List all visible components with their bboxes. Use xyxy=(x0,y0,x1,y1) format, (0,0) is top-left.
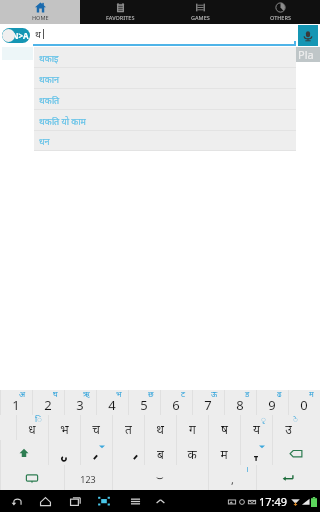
staticText: 6 xyxy=(172,396,180,414)
staticText: FAVORITES xyxy=(106,14,135,21)
staticText: 0 xyxy=(300,396,308,414)
staticText: छ xyxy=(148,388,154,399)
staticText: 4 xyxy=(108,396,116,414)
staticText: म xyxy=(309,388,314,399)
button[interactable]: उ xyxy=(272,415,304,440)
button[interactable]: , xyxy=(208,465,256,490)
staticText: अ xyxy=(19,388,26,399)
staticText: धन xyxy=(39,135,50,147)
button[interactable]: धन xyxy=(34,131,296,151)
button[interactable]: थकति यो काम xyxy=(34,110,296,131)
staticText: ब xyxy=(157,446,164,462)
staticText: थकति xyxy=(39,94,60,106)
button[interactable]: 6 xyxy=(160,390,192,415)
button[interactable]: म xyxy=(208,440,240,465)
staticText: GAMES xyxy=(191,14,210,21)
staticText: भ xyxy=(60,421,69,437)
button[interactable]: 4 xyxy=(96,390,128,415)
staticText: 9 xyxy=(268,396,276,414)
staticText: ऋ xyxy=(83,388,90,399)
staticText: य xyxy=(253,421,260,437)
staticText: OTHERS xyxy=(270,14,291,21)
button[interactable]: 5 xyxy=(128,390,160,415)
button[interactable]: FAVORITES xyxy=(80,0,160,24)
button[interactable]: ध xyxy=(16,415,48,440)
button[interactable]: Home xyxy=(36,490,54,512)
staticText: HOME xyxy=(32,14,49,21)
staticText: Plan xyxy=(298,47,320,62)
button[interactable]: च xyxy=(80,415,112,440)
button[interactable]: 8 xyxy=(224,390,256,415)
button[interactable]: GAMES xyxy=(160,0,240,24)
button[interactable]: 3 xyxy=(64,390,96,415)
button[interactable]: Keyboard settings xyxy=(0,465,64,490)
staticText: 5 xyxy=(140,396,148,414)
staticText: ⌣ xyxy=(156,471,164,483)
button[interactable]: थकाइ xyxy=(34,47,296,68)
button[interactable]: ⌣ xyxy=(112,465,208,490)
button[interactable]: 2 xyxy=(32,390,64,415)
button[interactable]: 9 xyxy=(256,390,288,415)
staticText: थकान xyxy=(39,73,59,85)
staticText: ट xyxy=(181,388,186,399)
staticText: ि xyxy=(35,413,42,424)
button[interactable]: Screenshot xyxy=(95,490,113,512)
button[interactable]: भ xyxy=(48,415,80,440)
staticText: भ xyxy=(116,388,122,399)
staticText: त xyxy=(125,421,132,437)
button[interactable]: थकति xyxy=(34,89,296,110)
button[interactable]: Shift xyxy=(0,440,48,465)
button[interactable]: 0 xyxy=(288,390,320,415)
button[interactable]: त xyxy=(112,415,144,440)
button[interactable]: Diacritic key xyxy=(240,440,272,465)
button[interactable]: थकान xyxy=(34,68,296,89)
staticText: 123 xyxy=(80,473,96,485)
button[interactable]: ग xyxy=(176,415,208,440)
staticText: थकति यो काम xyxy=(39,115,86,127)
staticText: , xyxy=(231,472,234,487)
staticText: क xyxy=(187,446,197,462)
button[interactable]: HOME xyxy=(0,0,80,24)
button[interactable]: थ xyxy=(144,415,176,440)
button[interactable]: ष xyxy=(208,415,240,440)
button[interactable]: Voice search xyxy=(298,25,318,46)
staticText: ऊ xyxy=(211,388,218,399)
button[interactable]: य xyxy=(240,415,272,440)
button[interactable]: Diacritic key xyxy=(48,440,80,465)
staticText: ग xyxy=(189,421,196,437)
button[interactable]: Diacritic key xyxy=(112,440,144,465)
button[interactable]: Menu xyxy=(126,490,144,512)
button[interactable]: क xyxy=(176,440,208,465)
staticText: म xyxy=(220,446,228,462)
button[interactable]: Hide navigation xyxy=(151,490,169,512)
staticText: े xyxy=(293,413,298,424)
staticText: घ xyxy=(53,388,58,399)
staticText: 1 xyxy=(12,396,20,414)
button[interactable]: 7 xyxy=(192,390,224,415)
staticText: 2 xyxy=(44,396,52,414)
staticText: ध xyxy=(28,421,36,437)
button[interactable]: 1 xyxy=(0,390,32,415)
staticText: ढ xyxy=(277,388,282,399)
staticText: ृ xyxy=(261,413,266,424)
staticText: थकाइ xyxy=(39,52,59,64)
staticText: ष xyxy=(221,421,228,437)
button[interactable]: ब xyxy=(144,440,176,465)
staticText: थ xyxy=(156,421,164,437)
button[interactable]: Recents xyxy=(66,490,84,512)
staticText: 7 xyxy=(204,396,212,414)
staticText: 8 xyxy=(236,396,244,414)
button[interactable]: Diacritic key xyxy=(80,440,112,465)
button[interactable]: OTHERS xyxy=(240,0,320,24)
staticText: च xyxy=(92,421,100,437)
staticText: ड xyxy=(245,388,250,399)
button[interactable]: Back xyxy=(7,490,25,512)
staticText: । xyxy=(246,463,250,474)
staticText: उ xyxy=(285,421,292,437)
staticText: थ xyxy=(35,28,41,40)
button[interactable]: Enter xyxy=(256,465,320,490)
staticText: 3 xyxy=(76,396,84,414)
button[interactable]: 123 xyxy=(64,465,112,490)
button[interactable]: Toggle Nepali to English xyxy=(2,28,30,43)
button[interactable]: Delete xyxy=(272,440,320,465)
